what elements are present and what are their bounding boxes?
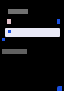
button[interactable] <box>5 28 60 37</box>
button[interactable]: Compose <box>57 86 62 91</box>
